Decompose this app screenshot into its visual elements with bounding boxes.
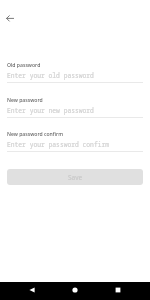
staticText: Enter your new password [7, 106, 94, 115]
staticText: Enter your password confirm [7, 140, 110, 149]
button[interactable]: Home [67, 282, 83, 298]
staticText: New password [7, 97, 43, 104]
button[interactable]: Back [2, 10, 18, 26]
button[interactable]: Recent apps [110, 282, 126, 298]
staticText: Enter your old password [7, 71, 94, 80]
button[interactable]: Back [24, 282, 40, 298]
staticText: Save [68, 173, 83, 182]
staticText: New password confirm [7, 131, 63, 138]
staticText: Old password [7, 62, 41, 69]
